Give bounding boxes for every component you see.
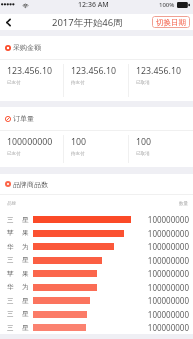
staticText: 100000000	[141, 295, 189, 306]
staticText: 品牌	[7, 201, 16, 207]
staticText: 100000000	[141, 228, 189, 239]
staticText: 已取消	[136, 151, 150, 157]
staticText: 为	[22, 243, 29, 251]
staticText: 三	[7, 216, 14, 224]
staticText: 100000000	[141, 282, 189, 293]
staticText: 果	[22, 270, 29, 278]
staticText: 已支付	[7, 80, 21, 86]
staticText: 100	[136, 136, 152, 148]
staticText: 星	[22, 256, 29, 264]
staticText: 123.456.10	[71, 65, 116, 77]
staticText: 数量	[179, 201, 188, 207]
staticText: 星	[22, 324, 29, 332]
staticText: 已取消	[136, 80, 150, 86]
staticText: 100	[71, 136, 87, 148]
staticText: 星	[22, 297, 29, 305]
staticText: 三	[7, 297, 14, 305]
staticText: 为	[22, 283, 29, 291]
staticText: 待支付	[71, 80, 85, 86]
staticText: 12:36 AM	[78, 0, 109, 10]
staticText: 100000000	[141, 322, 189, 333]
staticText: 三	[7, 256, 14, 264]
staticText: 2017年开始46周	[52, 16, 123, 29]
staticText: 100%	[159, 1, 175, 9]
staticText: 100000000	[141, 214, 189, 225]
staticText: 待支付	[71, 151, 85, 157]
staticText: 品牌商品数	[13, 180, 48, 189]
staticText: 切换日期	[156, 18, 186, 27]
staticText: 100000000	[141, 268, 189, 279]
button[interactable]: Back	[0, 14, 16, 30]
staticText: 100000000	[7, 136, 53, 148]
staticText: 果	[22, 229, 29, 237]
staticText: 订单量	[13, 114, 34, 123]
staticText: 100000000	[141, 241, 189, 252]
staticText: 星	[22, 216, 29, 224]
staticText: 100000000	[141, 309, 189, 320]
staticText: 苹	[7, 270, 14, 278]
staticText: 三	[7, 324, 14, 332]
staticText: 华	[7, 243, 14, 251]
staticText: 123.456.10	[136, 65, 181, 77]
button[interactable]: 切换日期	[152, 16, 190, 28]
staticText: 100000000	[141, 255, 189, 266]
staticText: 采购金额	[13, 43, 41, 52]
staticText: 123.456.10	[7, 65, 52, 77]
staticText: 三	[7, 310, 14, 318]
staticText: 华	[7, 283, 14, 291]
staticText: 苹	[7, 229, 14, 237]
staticText: 已支付	[7, 151, 21, 157]
staticText: 星	[22, 310, 29, 318]
